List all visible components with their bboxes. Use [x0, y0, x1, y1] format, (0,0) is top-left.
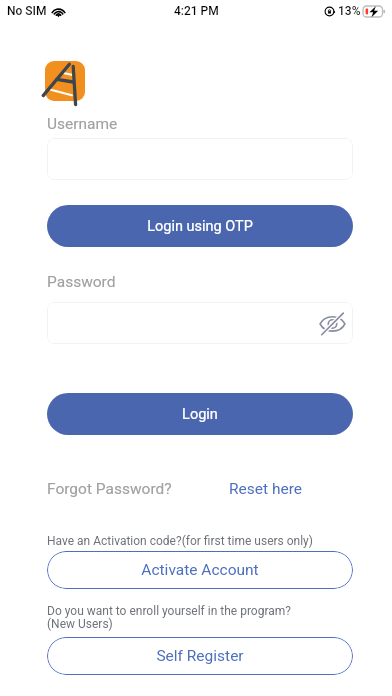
staticText: Do you want to enroll yourself in the pr…	[47, 604, 291, 631]
staticText: Activate Account	[141, 561, 259, 579]
staticText: Reset here	[229, 480, 302, 498]
staticText: Login	[182, 406, 218, 423]
staticText: Login using OTP	[147, 218, 253, 235]
staticText: 13%	[338, 4, 361, 18]
staticText: Have an Activation code?(for first time …	[47, 534, 313, 548]
staticText: Password	[47, 273, 116, 291]
button[interactable]: Show password	[317, 308, 347, 338]
button[interactable]: Activate Account	[47, 551, 353, 589]
staticText: Forgot Password?	[47, 480, 172, 498]
staticText: Self Register	[156, 647, 244, 665]
staticText: Username	[47, 115, 118, 133]
button[interactable]: Self Register	[47, 637, 353, 675]
button[interactable]: Login using OTP	[47, 205, 353, 247]
staticText: No SIM	[7, 4, 47, 18]
button[interactable]: Show password	[47, 302, 353, 344]
button[interactable]: Login	[47, 393, 353, 435]
staticText: 4:21 PM	[174, 4, 219, 18]
button[interactable]: Reset here	[229, 480, 302, 498]
